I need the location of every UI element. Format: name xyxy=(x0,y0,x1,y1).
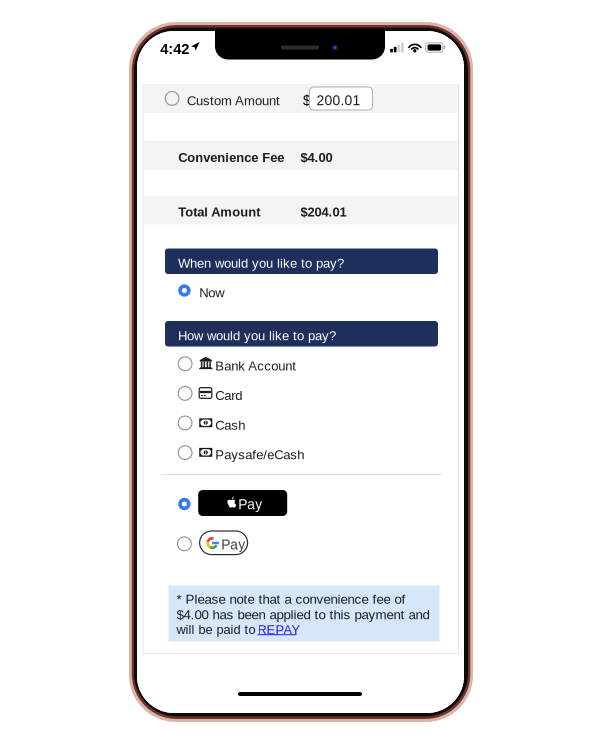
button[interactable]: Now xyxy=(178,278,298,302)
staticText: 4:42 xyxy=(160,41,189,57)
staticText: REPAY xyxy=(257,623,300,637)
staticText: Bank Account xyxy=(215,359,296,373)
staticText: Paysafe/eCash xyxy=(215,447,304,462)
staticText: Custom Amount xyxy=(187,93,280,108)
staticText: will be paid to xyxy=(176,622,255,637)
staticText: Pay xyxy=(238,497,262,512)
staticText: Total Amount xyxy=(178,205,260,219)
staticText: * Please note that a convenience fee of xyxy=(176,592,405,606)
button[interactable]: REPAY xyxy=(257,623,301,638)
staticText: How would you like to pay? xyxy=(178,328,336,343)
staticText: Pay xyxy=(221,537,245,552)
staticText: Card xyxy=(215,388,242,403)
button[interactable]: Paysafe/eCash xyxy=(178,444,338,462)
button[interactable]: Card xyxy=(178,384,338,402)
staticText: 200.01 xyxy=(316,93,360,108)
button[interactable]: Pay xyxy=(178,490,333,518)
button[interactable]: Bank Account xyxy=(178,355,338,373)
staticText: $4.00 has been applied to this payment a… xyxy=(176,607,429,622)
staticText: Convenience Fee xyxy=(178,150,284,165)
staticText: Now xyxy=(199,285,224,300)
staticText: Cash xyxy=(215,418,245,432)
button[interactable]: Cash xyxy=(178,414,338,432)
staticText: $ xyxy=(303,93,311,108)
staticText: $204.01 xyxy=(300,205,346,219)
staticText: When would you like to pay? xyxy=(178,256,344,270)
button[interactable]: Pay xyxy=(178,531,333,557)
staticText: $4.00 xyxy=(300,150,332,165)
button[interactable]: Custom Amount xyxy=(144,84,458,113)
